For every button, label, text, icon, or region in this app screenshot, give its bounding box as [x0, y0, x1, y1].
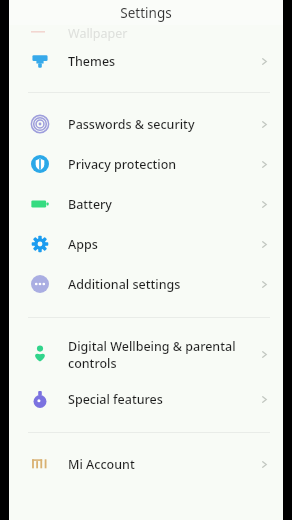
button[interactable]: Apps	[9, 224, 283, 264]
button[interactable]: Passwords & security	[9, 104, 283, 144]
staticText: Battery	[68, 196, 253, 213]
button[interactable]: Mi Account	[9, 444, 283, 484]
staticText: Wallpaper	[68, 25, 128, 41]
button[interactable]: Privacy protection	[9, 144, 283, 184]
staticText: Themes	[68, 53, 253, 70]
staticText: Privacy protection	[68, 156, 253, 173]
staticText: Mi Account	[68, 456, 253, 473]
button[interactable]: Additional settings	[9, 264, 283, 304]
button[interactable]: Wallpaper	[9, 25, 283, 41]
button[interactable]: Special features	[9, 379, 283, 419]
staticText: Special features	[68, 391, 253, 408]
button[interactable]: Themes	[9, 41, 283, 81]
button[interactable]: Battery	[9, 184, 283, 224]
staticText: Passwords & security	[68, 116, 253, 133]
staticText: Settings	[120, 4, 172, 22]
staticText: Additional settings	[68, 276, 253, 293]
staticText: Digital Wellbeing & parental controls	[68, 338, 253, 371]
staticText: Apps	[68, 236, 253, 253]
button[interactable]: Digital Wellbeing & parental controls	[9, 329, 283, 379]
